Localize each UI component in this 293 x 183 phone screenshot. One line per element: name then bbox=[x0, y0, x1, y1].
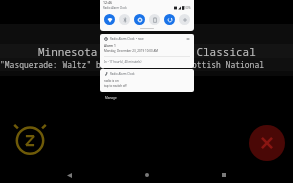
staticText: 12:46 bbox=[103, 0, 112, 5]
staticText: Radio Alarm Clock bbox=[103, 6, 127, 10]
staticText: Monday, December 23, 2019 10:00 AM bbox=[104, 49, 159, 53]
button[interactable]: Manage bbox=[100, 95, 122, 101]
button[interactable]: Home bbox=[139, 167, 155, 183]
button[interactable]: Flashlight bbox=[179, 14, 190, 25]
button[interactable]: Radio Alarm Clock bbox=[100, 34, 194, 68]
button[interactable]: Dismiss bbox=[249, 125, 285, 161]
button[interactable]: Bluetooth bbox=[119, 14, 130, 25]
button[interactable]: Radio Alarm Clock bbox=[100, 69, 194, 92]
staticText: Alarm 1 bbox=[104, 44, 116, 48]
staticText: "Masquerade: Waltz" by Khachaturian - Sc… bbox=[0, 59, 293, 70]
staticText: Minnesota Public Radio Classical bbox=[38, 44, 256, 58]
staticText: Radio Alarm Clock bbox=[110, 37, 135, 41]
staticText: radio is on bbox=[104, 79, 119, 83]
staticText: 100% bbox=[184, 6, 191, 10]
button[interactable]: Back bbox=[61, 167, 77, 183]
staticText: Manage bbox=[105, 96, 117, 100]
button[interactable]: Do not disturb bbox=[134, 14, 145, 25]
button[interactable]: Battery saver bbox=[149, 14, 160, 25]
staticText: Radio Alarm Clock bbox=[110, 72, 135, 76]
staticText: tap to switch off bbox=[104, 84, 127, 88]
button[interactable]: Wi-Fi bbox=[104, 14, 115, 25]
staticText: In ~17 hour(s), 40 minute(s) bbox=[104, 60, 142, 64]
button[interactable]: Snooze bbox=[8, 117, 52, 161]
staticText: • now bbox=[136, 37, 144, 41]
button[interactable]: Recents bbox=[216, 167, 232, 183]
button[interactable]: Rotate bbox=[164, 14, 175, 25]
